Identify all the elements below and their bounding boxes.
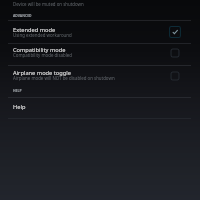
- button[interactable]: Airplane mode toggle checkbox: [169, 70, 181, 82]
- staticText: Compatibility mode disabled: [13, 52, 72, 58]
- button[interactable]: Compatibility mode: [0, 44, 200, 62]
- staticText: HELP: [13, 88, 22, 93]
- staticText: Help: [13, 103, 26, 111]
- staticText: Airplane mode toggle: [13, 69, 71, 77]
- button[interactable]: Extended mode checkbox: [169, 26, 181, 38]
- button[interactable]: Help: [0, 99, 200, 117]
- staticText: Device will be muted on shutdown: [13, 1, 84, 7]
- button[interactable]: Compatibility mode checkbox: [169, 47, 181, 59]
- staticText: Extended mode: [13, 26, 56, 34]
- button[interactable]: Extended mode: [0, 24, 200, 42]
- staticText: Compatibility mode: [13, 46, 66, 54]
- button[interactable]: Airplane mode toggle: [0, 67, 200, 85]
- staticText: ADVANCED: [13, 13, 32, 18]
- staticText: Airplane mode will NOT be disabled on sh…: [13, 75, 115, 81]
- staticText: Using extended workaround: [13, 32, 72, 38]
